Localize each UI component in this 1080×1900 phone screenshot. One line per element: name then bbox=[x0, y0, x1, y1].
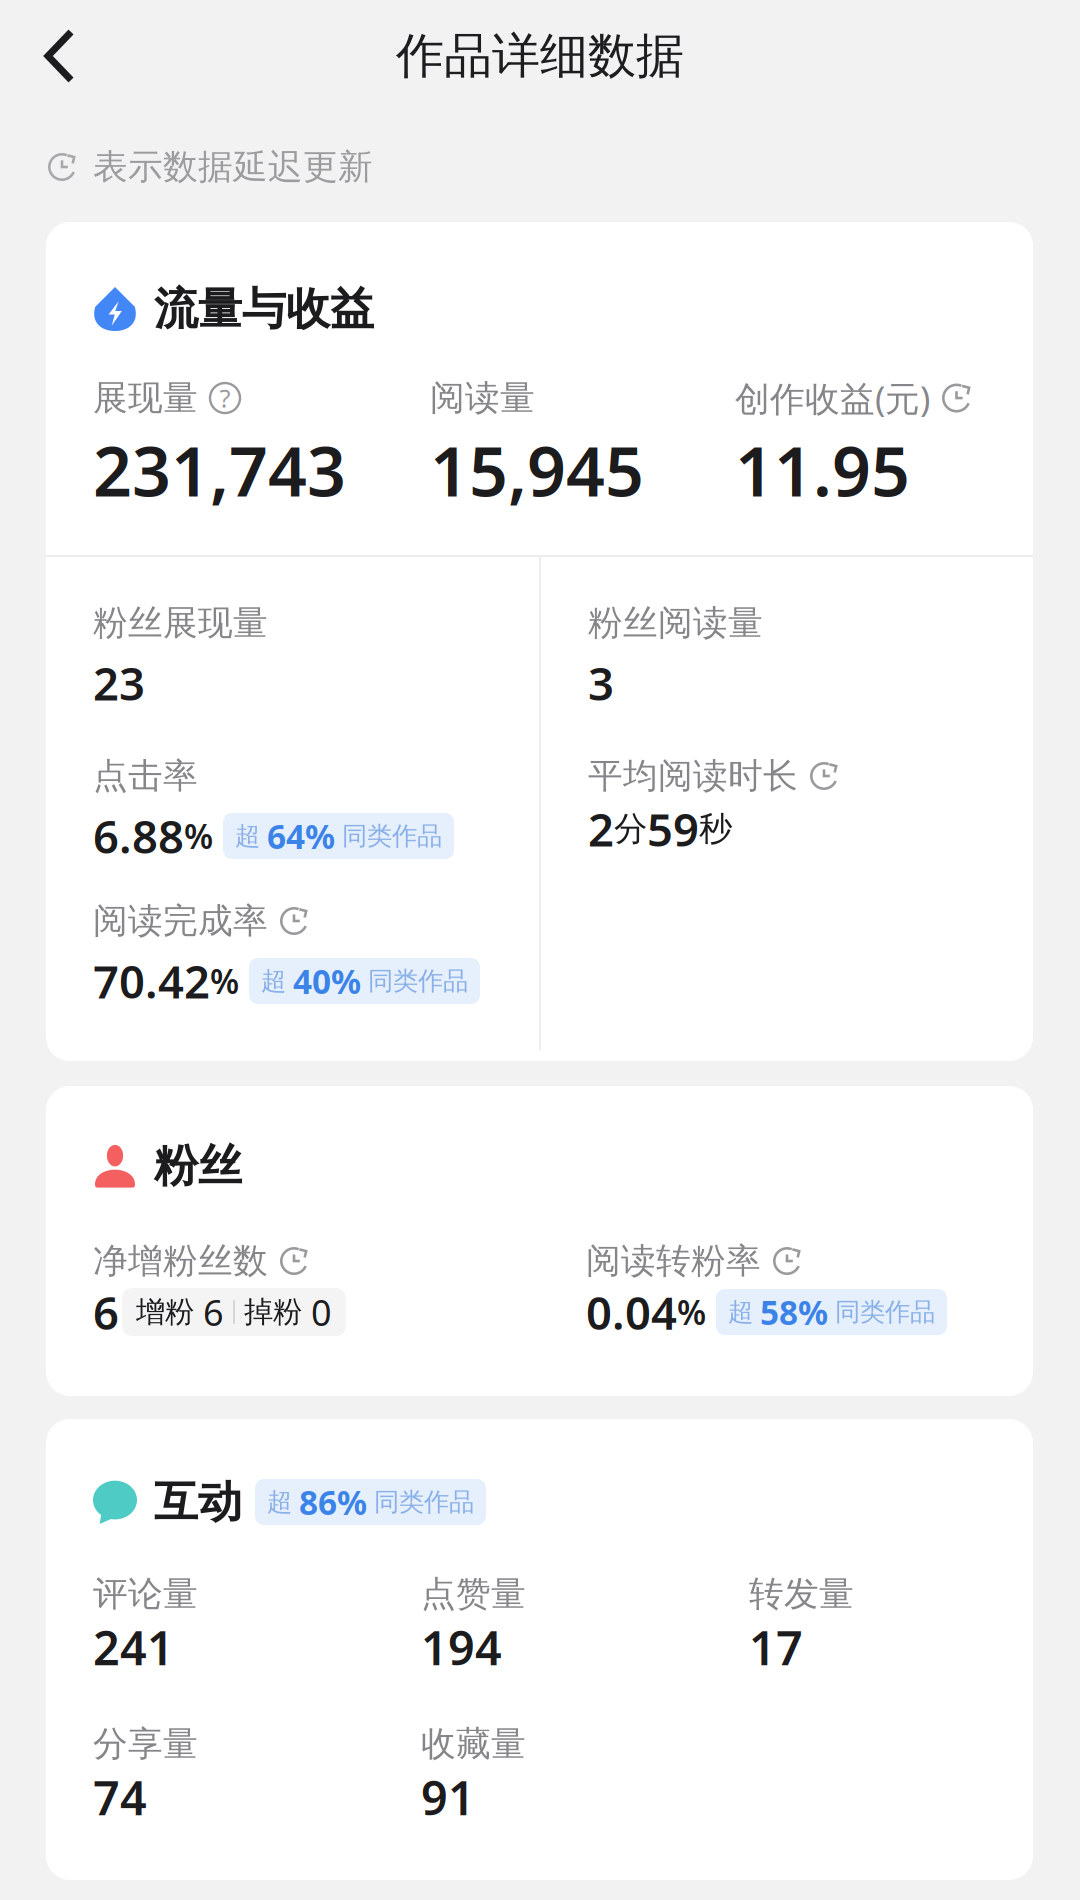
staticText: 超 bbox=[267, 1486, 292, 1518]
staticText: 0 bbox=[311, 1288, 332, 1336]
staticText: 同类作品 bbox=[342, 820, 442, 851]
staticText: 收藏量 bbox=[421, 1723, 526, 1765]
staticText: 6.88 bbox=[93, 806, 184, 866]
staticText: 23 bbox=[93, 653, 145, 713]
staticText: 同类作品 bbox=[374, 1486, 474, 1518]
staticText: 评论量 bbox=[93, 1573, 198, 1615]
staticText: 15,945 bbox=[430, 425, 644, 515]
staticText: 创作收益(元) bbox=[735, 375, 930, 421]
staticText: 粉丝 bbox=[154, 1139, 242, 1193]
staticText: 11.95 bbox=[735, 425, 910, 515]
staticText: 粉丝展现量 bbox=[93, 602, 268, 644]
staticText: 超 bbox=[235, 820, 260, 851]
staticText: 阅读量 bbox=[430, 377, 535, 419]
staticText: 净增粉丝数 bbox=[93, 1240, 268, 1282]
staticText: 阅读完成率 bbox=[93, 900, 268, 942]
staticText: 粉丝阅读量 bbox=[588, 602, 763, 644]
staticText: 互动 bbox=[154, 1475, 242, 1529]
staticText: % bbox=[677, 1290, 706, 1334]
staticText: 分 bbox=[614, 808, 647, 849]
staticText: 2 bbox=[588, 799, 614, 859]
staticText: 作品详细数据 bbox=[396, 26, 684, 85]
staticText: 增粉 bbox=[136, 1294, 194, 1330]
staticText: 86% bbox=[299, 1480, 367, 1524]
staticText: 转发量 bbox=[749, 1573, 854, 1615]
staticText: 64% bbox=[267, 814, 335, 858]
staticText: 70.42 bbox=[93, 951, 210, 1011]
staticText: 17 bbox=[749, 1616, 803, 1678]
button[interactable]: Back bbox=[0, 0, 119, 112]
staticText: 阅读转粉率 bbox=[586, 1240, 761, 1282]
staticText: 同类作品 bbox=[835, 1296, 935, 1328]
staticText: 超 bbox=[728, 1296, 753, 1328]
staticText: 同类作品 bbox=[368, 965, 468, 996]
staticText: 74 bbox=[93, 1766, 147, 1828]
staticText: 231,743 bbox=[93, 425, 346, 515]
staticText: 6 bbox=[93, 1282, 119, 1342]
staticText: 掉粉 bbox=[244, 1294, 302, 1330]
staticText: 平均阅读时长 bbox=[588, 755, 798, 797]
staticText: 58% bbox=[760, 1290, 828, 1334]
staticText: % bbox=[210, 959, 239, 1003]
staticText: 59 bbox=[647, 799, 699, 859]
staticText: % bbox=[184, 814, 213, 858]
staticText: 分享量 bbox=[93, 1723, 198, 1765]
staticText: 241 bbox=[93, 1616, 174, 1678]
staticText: 点赞量 bbox=[421, 1573, 526, 1615]
staticText: 40% bbox=[293, 959, 361, 1003]
staticText: 91 bbox=[421, 1766, 475, 1828]
staticText: 秒 bbox=[699, 808, 732, 849]
staticText: 超 bbox=[261, 965, 286, 996]
staticText: 点击率 bbox=[93, 755, 198, 797]
staticText: 6 bbox=[203, 1288, 224, 1336]
staticText: 表示数据延迟更新 bbox=[93, 146, 373, 188]
staticText: 展现量 bbox=[93, 377, 198, 419]
staticText: 194 bbox=[421, 1616, 502, 1678]
staticText: 0.04 bbox=[586, 1282, 677, 1342]
staticText: 3 bbox=[588, 653, 614, 713]
staticText: 流量与收益 bbox=[154, 282, 374, 336]
staticText: ? bbox=[219, 381, 230, 415]
